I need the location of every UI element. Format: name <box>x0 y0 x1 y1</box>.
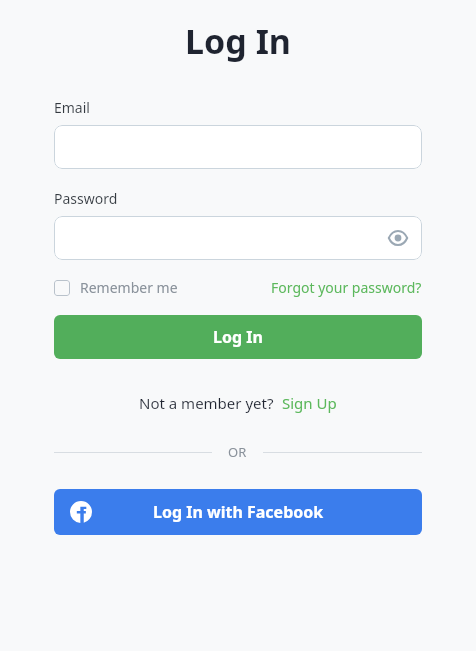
staticText: OR <box>228 443 247 461</box>
button[interactable]: Forgot your password? <box>271 278 422 297</box>
button[interactable]: Sign Up <box>282 393 337 413</box>
button[interactable]: Log In <box>54 315 422 359</box>
staticText: Log In <box>213 326 263 348</box>
staticText: Forgot your password? <box>271 278 422 297</box>
button[interactable]: Remember me <box>54 278 178 297</box>
button[interactable]: Password field <box>54 216 422 260</box>
button[interactable]: Email field <box>54 125 422 169</box>
staticText: Remember me <box>80 278 178 297</box>
staticText: Email <box>54 98 90 117</box>
staticText: Log In with Facebook <box>153 501 324 523</box>
staticText: Not a member yet? <box>139 393 274 413</box>
staticText: Log In <box>54 18 422 64</box>
staticText: Password <box>54 189 118 208</box>
button[interactable]: Log In with Facebook <box>54 489 422 535</box>
button[interactable]: Show password <box>386 226 410 250</box>
staticText: Sign Up <box>282 393 337 413</box>
